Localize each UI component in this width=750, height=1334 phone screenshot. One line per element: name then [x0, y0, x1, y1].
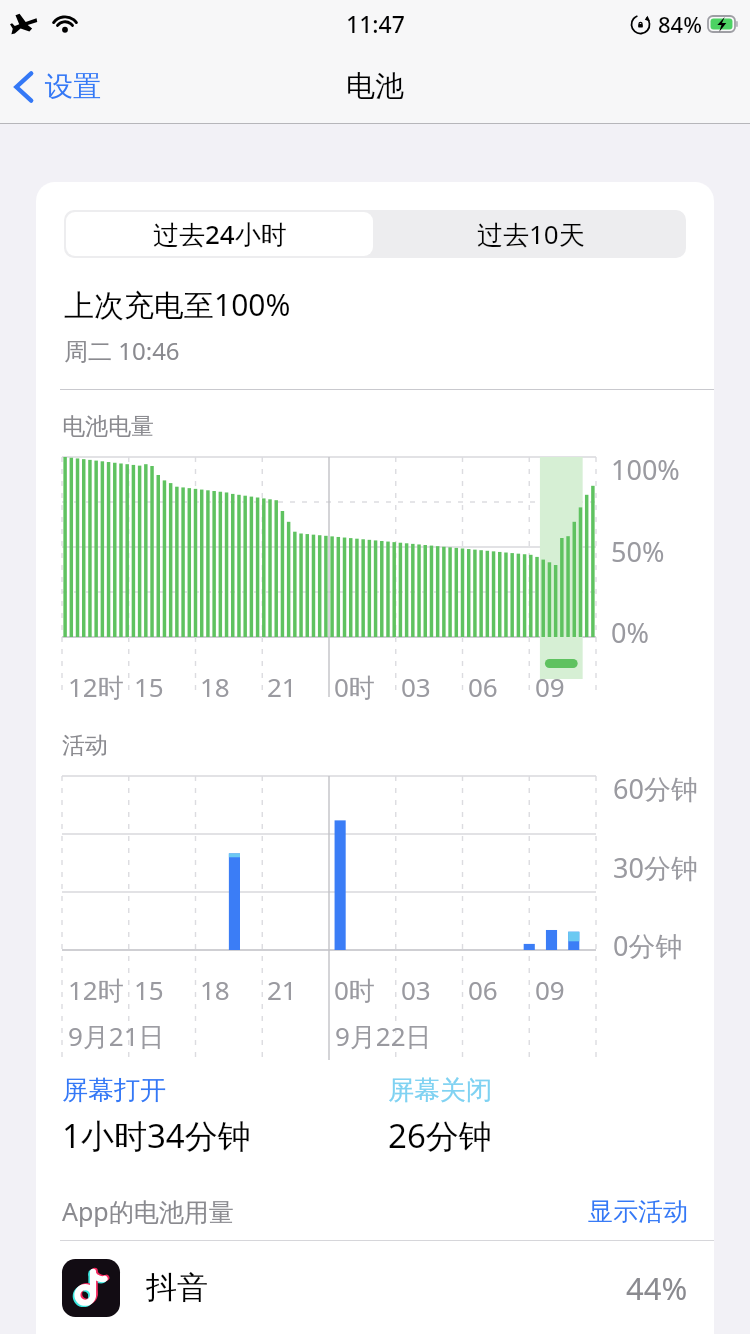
staticText: 活动 — [62, 731, 108, 760]
button[interactable]: 抖音 — [36, 1241, 714, 1334]
staticText: 0时 — [334, 972, 375, 1008]
staticText: 周二 10:46 — [64, 334, 180, 367]
staticText: 设置 — [45, 69, 101, 104]
button[interactable]: 过去24小时 — [66, 212, 373, 256]
staticText: 21 — [267, 669, 297, 704]
staticText: 06 — [468, 972, 498, 1007]
button[interactable]: 过去10天 — [375, 210, 686, 258]
staticText: 03 — [401, 972, 431, 1007]
staticText: 11:47 — [346, 8, 405, 39]
staticText: 过去10天 — [477, 216, 585, 252]
staticText: 1小时34分钟 — [62, 1113, 251, 1158]
staticText: 60分钟 — [613, 770, 698, 807]
staticText: 15 — [134, 669, 164, 704]
staticText: 30分钟 — [613, 849, 698, 886]
staticText: 屏幕关闭 — [388, 1074, 492, 1107]
staticText: 0分钟 — [613, 927, 683, 964]
staticText: 03 — [401, 669, 431, 704]
staticText: 屏幕打开 — [62, 1074, 166, 1107]
staticText: 18 — [200, 972, 230, 1007]
staticText: 12时 — [68, 972, 124, 1008]
staticText: 12时 — [68, 669, 124, 705]
button[interactable]: 设置 — [0, 63, 115, 110]
staticText: 过去24小时 — [153, 216, 287, 252]
staticText: 100% — [611, 451, 680, 488]
staticText: 09 — [535, 669, 565, 704]
staticText: 18 — [200, 669, 230, 704]
staticText: 0时 — [334, 669, 375, 705]
staticText: 0% — [611, 614, 649, 651]
staticText: 15 — [134, 972, 164, 1007]
staticText: 84% — [658, 9, 702, 39]
staticText: 44% — [626, 1267, 688, 1309]
staticText: 9月21日 — [68, 1018, 165, 1054]
staticText: App的电池用量 — [62, 1194, 234, 1228]
staticText: 显示活动 — [588, 1196, 688, 1227]
staticText: 21 — [267, 972, 297, 1007]
staticText: 9月22日 — [335, 1018, 432, 1054]
staticText: 抖音 — [146, 1268, 208, 1307]
staticText: 06 — [468, 669, 498, 704]
staticText: 上次充电至100% — [64, 284, 291, 325]
staticText: 50% — [611, 533, 665, 570]
button[interactable]: 显示活动 — [588, 1196, 688, 1227]
staticText: 09 — [535, 972, 565, 1007]
staticText: 电池 — [346, 68, 404, 105]
staticText: 电池电量 — [62, 412, 154, 441]
staticText: 26分钟 — [388, 1113, 492, 1158]
